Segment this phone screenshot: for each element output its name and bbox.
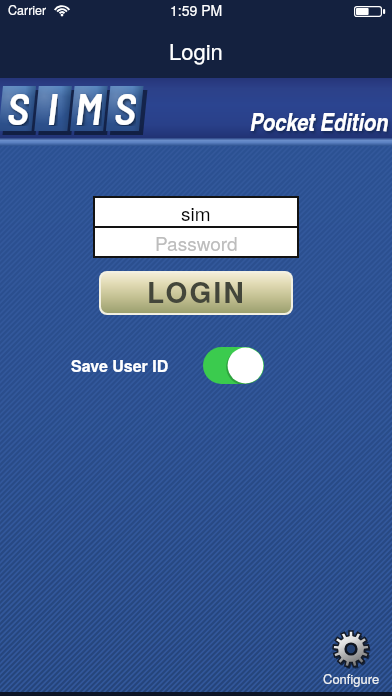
button[interactable]: Password: [95, 228, 297, 256]
staticText: Pocket Edition: [250, 104, 389, 138]
button[interactable]: sim: [95, 198, 297, 226]
staticText: Password: [155, 229, 238, 256]
staticText: Carrier: [8, 1, 47, 19]
staticText: S: [7, 81, 29, 126]
staticText: Configure: [323, 669, 380, 688]
staticText: sim: [181, 199, 211, 226]
staticText: LOGIN: [147, 273, 246, 311]
button[interactable]: LOGIN: [101, 273, 291, 313]
staticText: I: [47, 81, 58, 126]
staticText: Login: [169, 35, 223, 67]
button[interactable]: Configure: [319, 629, 383, 688]
staticText: 1:59 PM: [170, 0, 223, 20]
staticText: M: [75, 81, 102, 126]
button[interactable]: Save User ID: [203, 347, 264, 384]
staticText: Save User ID: [71, 354, 169, 377]
staticText: S: [114, 81, 136, 126]
